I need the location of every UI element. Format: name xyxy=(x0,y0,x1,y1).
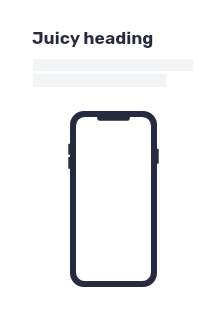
button[interactable]: Phone preview xyxy=(70,111,157,287)
staticText: Juicy heading xyxy=(32,28,154,49)
